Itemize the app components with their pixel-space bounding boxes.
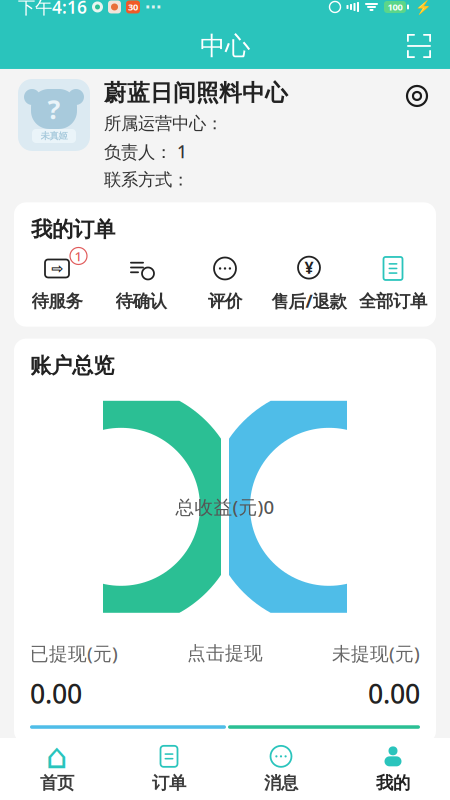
staticText: 全部 › [375, 771, 420, 794]
button[interactable]: ¥ [267, 253, 351, 313]
button[interactable]: 扫一扫 [396, 23, 442, 69]
staticText: 中心 [200, 30, 250, 61]
staticText: 30 [128, 1, 138, 13]
button[interactable]: 待确认 [99, 253, 183, 312]
button[interactable]: 订单 [113, 738, 225, 800]
staticText: 待服务 [31, 290, 82, 312]
staticText: 蔚蓝日间照料中心 [104, 79, 288, 107]
button[interactable]: ? [0, 79, 450, 190]
staticText: ¥ [304, 257, 313, 278]
staticText: 未真姬 [40, 130, 67, 142]
staticText: 所属运营中心： [104, 113, 223, 134]
staticText: 联系方式： [104, 169, 189, 190]
button[interactable]: ⇨ [15, 253, 99, 312]
staticText: 已提现(元) [30, 641, 118, 666]
staticText: 0.00 [368, 676, 420, 711]
staticText: 服务中心 [30, 769, 114, 795]
staticText: ? [47, 91, 60, 127]
staticText: 负责人： 1 [104, 140, 187, 163]
button[interactable]: 消息 [225, 738, 337, 800]
button[interactable]: 全部订单 [351, 253, 435, 312]
staticText: 全部订单 [359, 290, 427, 312]
staticText: 未提现(元) [332, 641, 420, 666]
button[interactable]: 评价 [183, 253, 267, 312]
staticText: 点击提现 [187, 642, 263, 665]
staticText: ⚡ [415, 0, 432, 14]
staticText: 首页 [40, 772, 74, 794]
staticText: 我的 [376, 772, 410, 794]
staticText: 待确认 [115, 290, 166, 312]
staticText: ⌂ [46, 737, 68, 776]
staticText: 下午4:16 [18, 0, 87, 18]
staticText: 售后/退款 [271, 290, 346, 313]
button[interactable]: 点击提现 [187, 642, 263, 710]
staticText: 总收益(元)0 [175, 494, 274, 519]
staticText: 账户总览 [30, 353, 114, 379]
staticText: 1 [74, 247, 82, 265]
button[interactable]: ⌂ [1, 738, 113, 800]
staticText: ⇨ [51, 260, 63, 277]
staticText: 100 [387, 1, 402, 13]
staticText: 0.00 [30, 676, 82, 711]
staticText: 评价 [208, 290, 242, 312]
staticText: 订单 [152, 772, 186, 794]
staticText: 我的订单 [31, 216, 115, 243]
staticText: ⋯ [145, 0, 161, 16]
staticText: 消息 [264, 772, 298, 794]
button[interactable]: 我的 [337, 738, 449, 800]
